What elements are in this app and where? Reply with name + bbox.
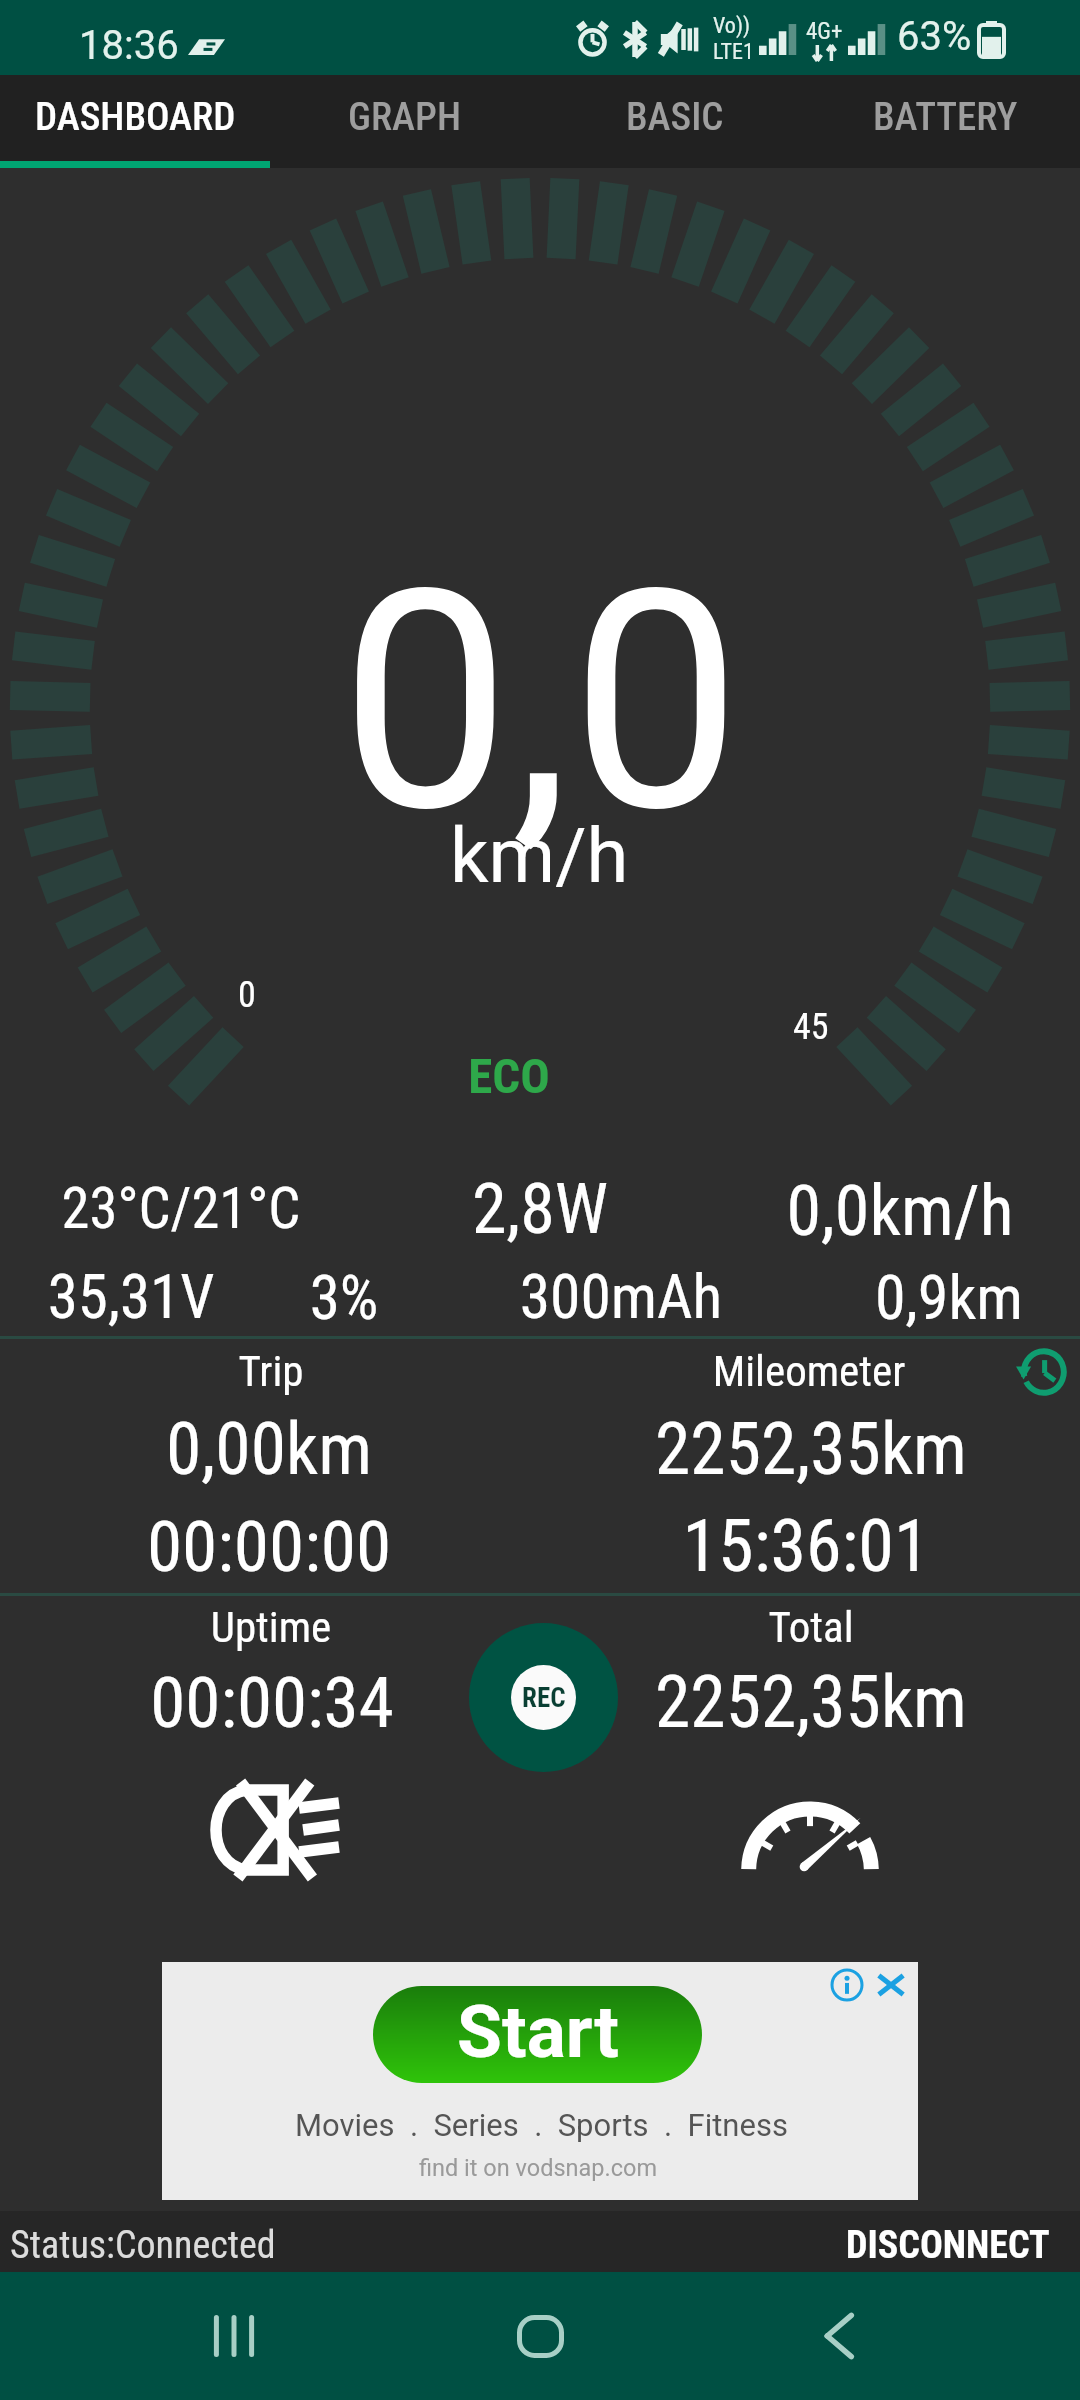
staticText: 4G+: [806, 18, 843, 45]
staticText: 2252,35km: [411, 1408, 1080, 1492]
staticText: 0,0km/h: [500, 1170, 1080, 1252]
staticText: Trip: [0, 1346, 671, 1396]
staticText: Vo)): [713, 13, 750, 39]
button[interactable]: Headlights off: [206, 1780, 339, 1880]
staticText: 0,9km: [549, 1261, 1080, 1334]
staticText: 00:00:34: [0, 1661, 672, 1744]
staticText: 23°C/21°C: [0, 1176, 581, 1242]
button[interactable]: Home: [450, 2272, 630, 2400]
staticText: 45: [793, 1006, 829, 1048]
staticText: GRAPH: [348, 94, 462, 140]
button[interactable]: Start: [162, 1962, 918, 2200]
staticText: ECO: [109, 1048, 909, 1105]
staticText: 00:00:00: [0, 1505, 669, 1588]
staticText: Total: [411, 1602, 1080, 1652]
staticText: 2252,35km: [411, 1661, 1080, 1745]
button[interactable]: Back: [749, 2272, 929, 2400]
staticText: find it on vodsnap.com: [419, 2154, 657, 2182]
button[interactable]: GRAPH: [270, 75, 540, 168]
staticText: 0: [238, 974, 256, 1016]
staticText: Mileometer: [409, 1346, 1080, 1396]
staticText: 18:36: [79, 22, 179, 69]
staticText: Start: [457, 1989, 619, 2075]
staticText: 3%: [0, 1262, 744, 1333]
staticText: km/h: [450, 811, 629, 900]
button[interactable]: BASIC: [540, 75, 810, 168]
button[interactable]: History: [1016, 1345, 1070, 1399]
staticText: REC: [522, 1682, 566, 1714]
staticText: Uptime: [0, 1602, 671, 1652]
staticText: DASHBOARD: [35, 94, 236, 140]
staticText: 63%: [897, 13, 972, 60]
staticText: 35,31V: [0, 1261, 531, 1332]
staticText: 0,0: [340, 524, 742, 880]
staticText: 2,8W: [140, 1168, 940, 1250]
staticText: 0,00km: [0, 1408, 669, 1492]
staticText: 15:36:01: [406, 1504, 1080, 1588]
staticText: LTE1: [713, 39, 754, 65]
staticText: BASIC: [626, 94, 724, 140]
staticText: BATTERY: [873, 94, 1018, 140]
button[interactable]: Record trip: [469, 1623, 618, 1772]
button[interactable]: BATTERY: [810, 75, 1080, 168]
staticText: 300mAh: [221, 1261, 1021, 1333]
button[interactable]: Close ad: [872, 1966, 910, 2004]
button[interactable]: Recent apps: [144, 2272, 324, 2400]
button[interactable]: DISCONNECT: [816, 2219, 1080, 2264]
button[interactable]: DASHBOARD: [0, 75, 270, 168]
button[interactable]: Speed limit: [737, 1784, 883, 1872]
button[interactable]: Ad info: [830, 1968, 864, 2002]
staticText: Movies . Series . Sports . Fitness: [295, 2107, 788, 2143]
staticText: Status:Connected: [10, 2223, 276, 2268]
staticText: DISCONNECT: [846, 2223, 1050, 2268]
